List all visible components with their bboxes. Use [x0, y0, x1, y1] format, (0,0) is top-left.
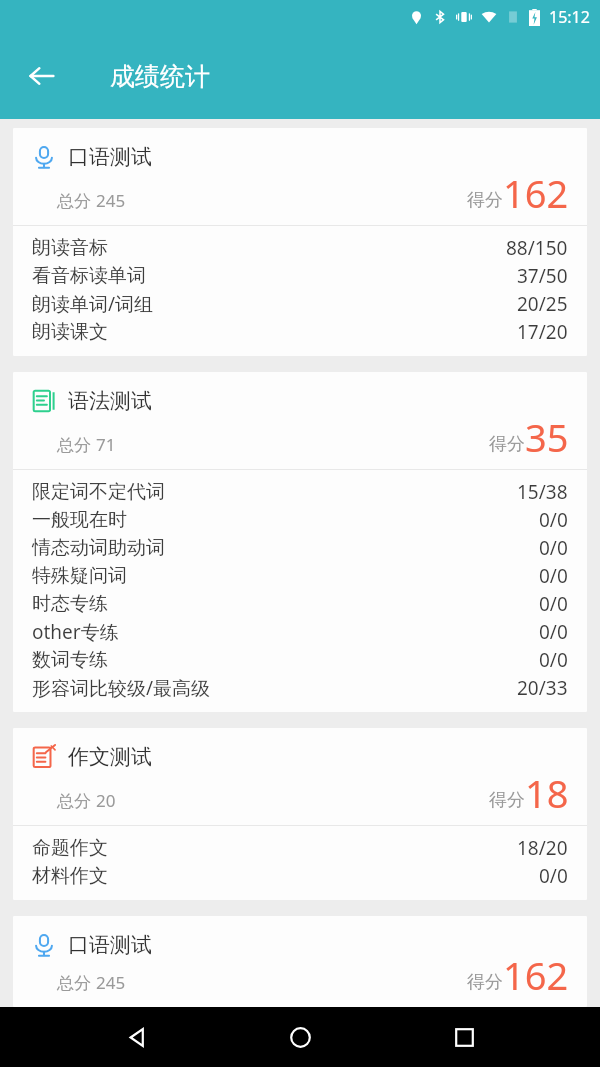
staticText: 245	[96, 971, 126, 994]
staticText: 0/0	[539, 535, 568, 561]
staticText: 20	[96, 789, 116, 812]
button[interactable]: other专练	[13, 618, 587, 646]
staticText: 88/150	[506, 235, 568, 261]
staticText: 口语测试	[68, 932, 152, 958]
staticText: 形容词比较级/最高级	[32, 675, 211, 701]
staticText: 15:12	[549, 6, 590, 28]
staticText: 35	[525, 411, 569, 463]
staticText: 37/50	[517, 263, 568, 289]
button[interactable]: 朗读音标	[13, 234, 587, 262]
staticText: 命题作文	[32, 836, 108, 860]
button[interactable]: 口语测试	[13, 128, 587, 356]
staticText: 总分	[57, 789, 96, 812]
button[interactable]: 情态动词助动词	[13, 534, 587, 562]
button[interactable]: 形容词比较级/最高级	[13, 674, 587, 702]
staticText: 限定词不定代词	[32, 480, 165, 504]
staticText: 20/33	[517, 675, 568, 701]
staticText: 17/20	[517, 319, 568, 345]
button[interactable]: Recents	[436, 1009, 492, 1065]
staticText: 特殊疑问词	[32, 564, 127, 588]
button[interactable]: Home	[272, 1009, 328, 1065]
staticText: 朗读单词/词组	[32, 291, 154, 317]
staticText: 得分	[489, 789, 525, 812]
staticText: 数词专练	[32, 648, 108, 672]
button[interactable]: Back	[18, 52, 66, 100]
staticText: 看音标读单词	[32, 264, 146, 288]
staticText: 情态动词助动词	[32, 536, 165, 560]
staticText: 0/0	[539, 647, 568, 673]
staticText: 语法测试	[68, 388, 152, 414]
button[interactable]: 语法测试	[13, 372, 587, 712]
staticText: 时态专练	[32, 592, 108, 616]
button[interactable]: 数词专练	[13, 646, 587, 674]
button[interactable]: 材料作文	[13, 862, 587, 890]
staticText: 0/0	[539, 591, 568, 617]
button[interactable]: 特殊疑问词	[13, 562, 587, 590]
staticText: 朗读课文	[32, 320, 108, 344]
staticText: 得分	[489, 433, 525, 456]
staticText: 0/0	[539, 619, 568, 645]
button[interactable]: 朗读课文	[13, 318, 587, 346]
staticText: 总分	[57, 971, 96, 994]
staticText: 20/25	[517, 291, 568, 317]
staticText: 162	[503, 949, 569, 1001]
staticText: 71	[96, 433, 116, 456]
staticText: 材料作文	[32, 864, 108, 888]
staticText: 作文测试	[68, 744, 152, 770]
staticText: 15/38	[517, 479, 568, 505]
staticText: 得分	[467, 971, 503, 994]
staticText: 0/0	[539, 863, 568, 889]
button[interactable]: 看音标读单词	[13, 262, 587, 290]
staticText: 一般现在时	[32, 508, 127, 532]
button[interactable]: Back	[108, 1009, 164, 1065]
button[interactable]: 一般现在时	[13, 506, 587, 534]
button[interactable]: 时态专练	[13, 590, 587, 618]
staticText: 朗读音标	[32, 236, 108, 260]
staticText: 245	[96, 189, 126, 212]
staticText: 18	[525, 767, 569, 819]
staticText: 口语测试	[68, 144, 152, 170]
staticText: other专练	[32, 619, 119, 645]
staticText: 0/0	[539, 507, 568, 533]
button[interactable]: 朗读单词/词组	[13, 290, 587, 318]
staticText: 得分	[467, 189, 503, 212]
button[interactable]: 命题作文	[13, 834, 587, 862]
button[interactable]: 作文测试	[13, 728, 587, 900]
button[interactable]: 口语测试	[13, 916, 587, 1007]
staticText: 成绩统计	[110, 61, 210, 92]
staticText: 0/0	[539, 563, 568, 589]
button[interactable]: 限定词不定代词	[13, 478, 587, 506]
staticText: 162	[503, 167, 569, 219]
staticText: 总分	[57, 189, 96, 212]
staticText: 总分	[57, 433, 96, 456]
staticText: 18/20	[517, 835, 568, 861]
